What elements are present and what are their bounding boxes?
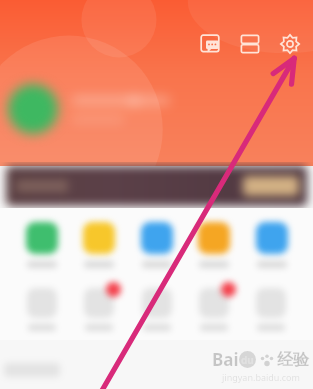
staticText: Bai [212,348,239,371]
staticText: du [241,353,254,367]
staticText: 经验 [277,350,309,370]
staticText: jingyan.baidu.com [222,371,300,383]
button[interactable]: Split screen [236,30,264,58]
button[interactable]: Settings [276,30,304,58]
button[interactable]: Messages [196,30,224,58]
